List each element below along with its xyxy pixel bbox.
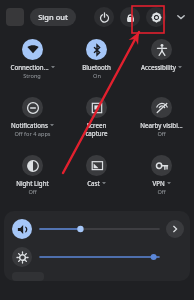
button[interactable]: Connection… (0, 34, 64, 92)
button[interactable]: Settings (146, 7, 166, 27)
staticText: Off (157, 188, 166, 196)
button[interactable]: Collapse panel (173, 9, 189, 25)
staticText: Bluetooth (82, 63, 111, 71)
button[interactable]: Notifications (0, 92, 64, 150)
button[interactable]: Cast (64, 150, 129, 208)
button[interactable]: Account avatar (6, 8, 24, 26)
staticText: Strong (23, 72, 41, 80)
staticText: Connection… (10, 63, 49, 71)
button[interactable]: Accessibility (129, 34, 194, 92)
button[interactable]: Screen capture (64, 92, 129, 150)
button[interactable]: Night Light (0, 150, 64, 208)
button[interactable]: Mute volume (12, 219, 32, 239)
staticText: Night Light (16, 179, 49, 187)
staticText: Nearby visibi… (140, 121, 183, 129)
button[interactable]: Bluetooth (64, 34, 129, 92)
button[interactable]: VPN (129, 150, 194, 208)
staticText: On (93, 72, 101, 80)
button[interactable]: Nearby visibi… (129, 92, 194, 150)
staticText: Off (28, 188, 37, 196)
button[interactable]: Audio settings (166, 220, 184, 238)
staticText: Sign out (38, 12, 68, 22)
button[interactable]: Sign out (30, 8, 76, 26)
staticText: Off (157, 130, 166, 138)
staticText: VPN (152, 179, 165, 187)
staticText: Cast (87, 179, 100, 187)
staticText: Screen capture (85, 121, 108, 137)
staticText: Off for 4 apps (14, 130, 51, 138)
staticText: Accessibility (141, 63, 176, 71)
button[interactable]: Lock screen (120, 7, 140, 27)
button[interactable]: Brightness (12, 247, 32, 267)
staticText: Notifications (11, 121, 48, 129)
button[interactable]: Power off (94, 7, 114, 27)
